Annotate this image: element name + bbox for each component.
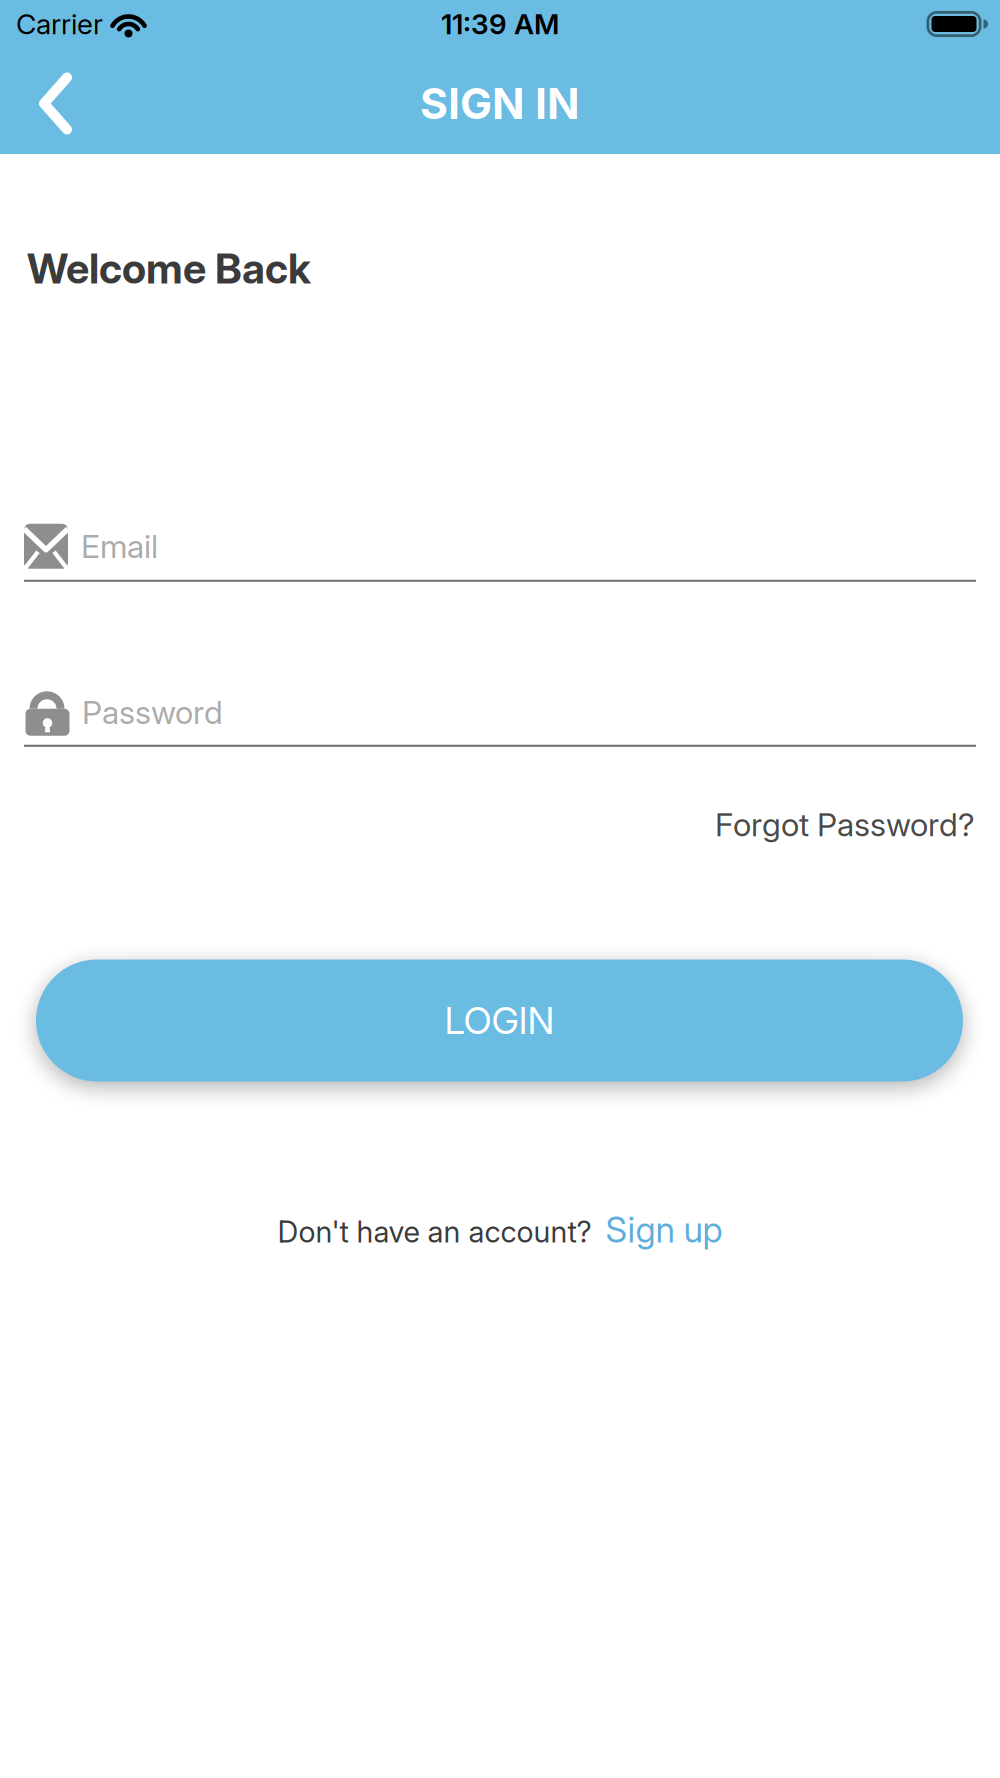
button[interactable]: Password bbox=[0, 689, 1000, 747]
button[interactable]: LOGIN bbox=[36, 959, 963, 1081]
button[interactable]: Sign up bbox=[605, 1209, 722, 1250]
staticText: Password bbox=[82, 693, 223, 731]
button[interactable]: Email bbox=[0, 524, 1000, 582]
staticText: Forgot Password? bbox=[715, 806, 975, 844]
staticText: SIGN IN bbox=[420, 78, 580, 129]
button[interactable]: Back bbox=[0, 74, 92, 132]
staticText: Welcome Back bbox=[27, 244, 311, 293]
staticText: LOGIN bbox=[444, 998, 554, 1042]
staticText: Sign up bbox=[605, 1209, 722, 1250]
staticText: Carrier bbox=[16, 7, 103, 40]
staticText: Email bbox=[81, 527, 158, 565]
button[interactable]: Forgot Password? bbox=[715, 806, 975, 844]
staticText: 11:39 AM bbox=[441, 7, 559, 40]
staticText: Don't have an account? bbox=[277, 1215, 591, 1249]
